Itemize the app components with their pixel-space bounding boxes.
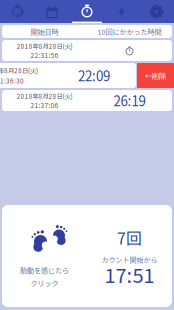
button[interactable]: 2018年8月28日(火) [0,90,174,111]
button[interactable]: Contractions [104,0,139,23]
staticText: 2018年8月28日(火) [16,41,72,50]
button[interactable]: 胎動を感じたら [2,205,87,307]
staticText: 開始日時 [30,26,58,37]
staticText: 22:31:56 [30,50,58,60]
button[interactable]: Kick counter [70,0,104,23]
staticText: ←削除 [145,70,166,81]
button[interactable]: 2018年8月28日(火) [0,40,174,61]
button[interactable]: Calendar [35,0,70,23]
staticText: 10回にかかった時間 [97,26,161,37]
staticText: 26:19 [113,91,145,110]
staticText: 21:37:06 [30,100,58,110]
staticText: 胎動を感じたら [20,265,69,275]
staticText: 17:51 [104,260,154,289]
button[interactable]: Settings [139,0,174,23]
staticText: クリック [30,278,58,288]
staticText: 7回 [117,226,142,249]
staticText: 2018年8月28日(火) [16,91,72,100]
button[interactable]: Baby [0,0,35,23]
staticText: 22:09 [78,66,110,85]
staticText: 2018年8月28日(火) [0,66,38,75]
staticText: 21:36:30 [0,76,24,85]
button[interactable]: ←削除 [137,63,174,88]
staticText: カウント開始から [101,255,157,265]
